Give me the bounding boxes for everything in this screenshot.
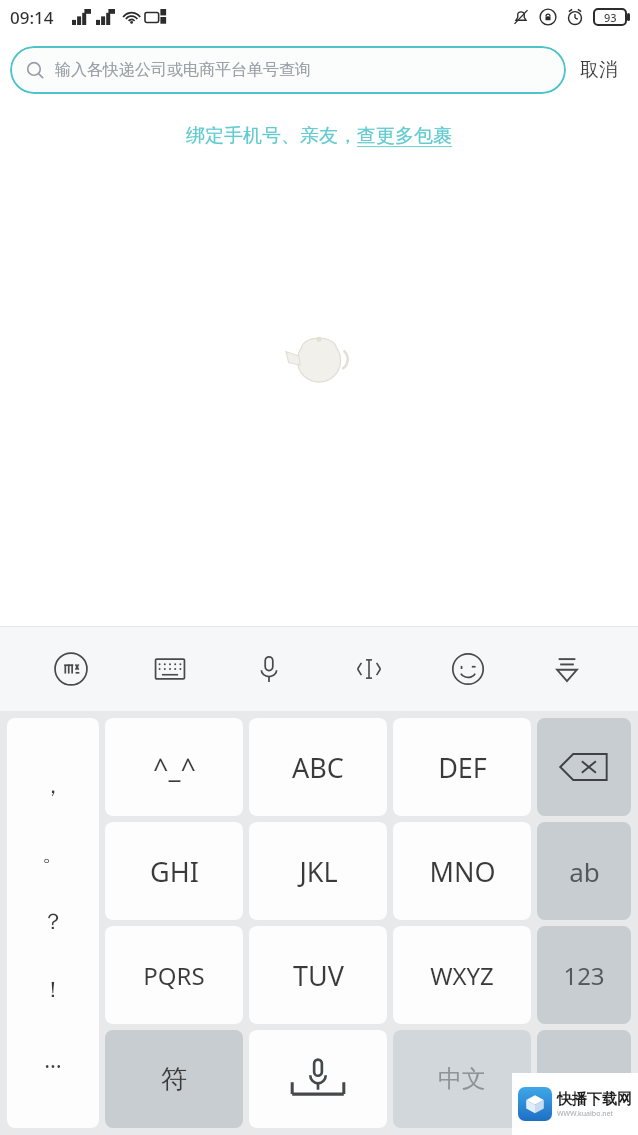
- button[interactable]: Symbols: [105, 1030, 243, 1128]
- button[interactable]: Numbers: [537, 926, 631, 1024]
- button[interactable]: 输入各快递公司或电商平台单号查询: [10, 46, 566, 94]
- button[interactable]: Enter: [537, 1030, 631, 1128]
- button[interactable]: Move cursor: [341, 641, 397, 697]
- staticText: TUV: [293, 957, 344, 994]
- staticText: ？: [42, 908, 64, 936]
- button[interactable]: Emoji: [440, 641, 496, 697]
- button[interactable]: Voice input: [241, 641, 297, 697]
- staticText: 123: [563, 959, 605, 992]
- staticText: 。: [42, 840, 64, 868]
- staticText: ABC: [292, 749, 344, 786]
- button[interactable]: ABC: [249, 718, 387, 816]
- button[interactable]: Input method: [43, 641, 99, 697]
- button[interactable]: 绑定手机号、亲友，: [186, 124, 452, 148]
- staticText: 查更多包裹: [357, 124, 452, 148]
- staticText: DEF: [438, 749, 487, 786]
- staticText: 93: [604, 10, 617, 25]
- button[interactable]: ^_^: [105, 718, 243, 816]
- other: Silent mode: [512, 8, 530, 26]
- staticText: WWW.kuaibo.net: [557, 1109, 614, 1119]
- button[interactable]: WXYZ: [393, 926, 531, 1024]
- button[interactable]: Letters: [537, 822, 631, 920]
- button[interactable]: MNO: [393, 822, 531, 920]
- button[interactable]: PQRS: [105, 926, 243, 1024]
- staticText: 快播下载网: [557, 1090, 632, 1109]
- staticText: …: [44, 1044, 62, 1074]
- button[interactable]: Chinese input: [393, 1030, 531, 1128]
- staticText: 中文: [438, 1064, 486, 1094]
- staticText: 输入各快递公司或电商平台单号查询: [55, 60, 311, 80]
- staticText: WXYZ: [430, 959, 494, 992]
- staticText: PQRS: [143, 959, 205, 992]
- button[interactable]: Punctuation: [7, 718, 99, 1128]
- button[interactable]: Hide keyboard: [539, 641, 595, 697]
- other: Rotation lock: [539, 8, 557, 26]
- staticText: ！: [42, 976, 64, 1004]
- button[interactable]: Keyboard layout: [142, 641, 198, 697]
- staticText: 绑定手机号、亲友，: [186, 124, 357, 148]
- button[interactable]: GHI: [105, 822, 243, 920]
- staticText: ^_^: [153, 749, 196, 786]
- staticText: MNO: [429, 853, 496, 890]
- staticText: GHI: [150, 853, 199, 890]
- staticText: JKL: [299, 853, 338, 890]
- staticText: 取消: [580, 58, 618, 82]
- staticText: 09:14: [10, 6, 54, 29]
- staticText: ，: [42, 772, 64, 800]
- staticText: ab: [569, 854, 600, 889]
- button[interactable]: TUV: [249, 926, 387, 1024]
- other: Alarm: [566, 8, 584, 26]
- staticText: 符: [161, 1063, 187, 1096]
- button[interactable]: Space: [249, 1030, 387, 1128]
- button[interactable]: JKL: [249, 822, 387, 920]
- button[interactable]: 取消: [566, 50, 632, 90]
- button[interactable]: Backspace: [537, 718, 631, 816]
- button[interactable]: DEF: [393, 718, 531, 816]
